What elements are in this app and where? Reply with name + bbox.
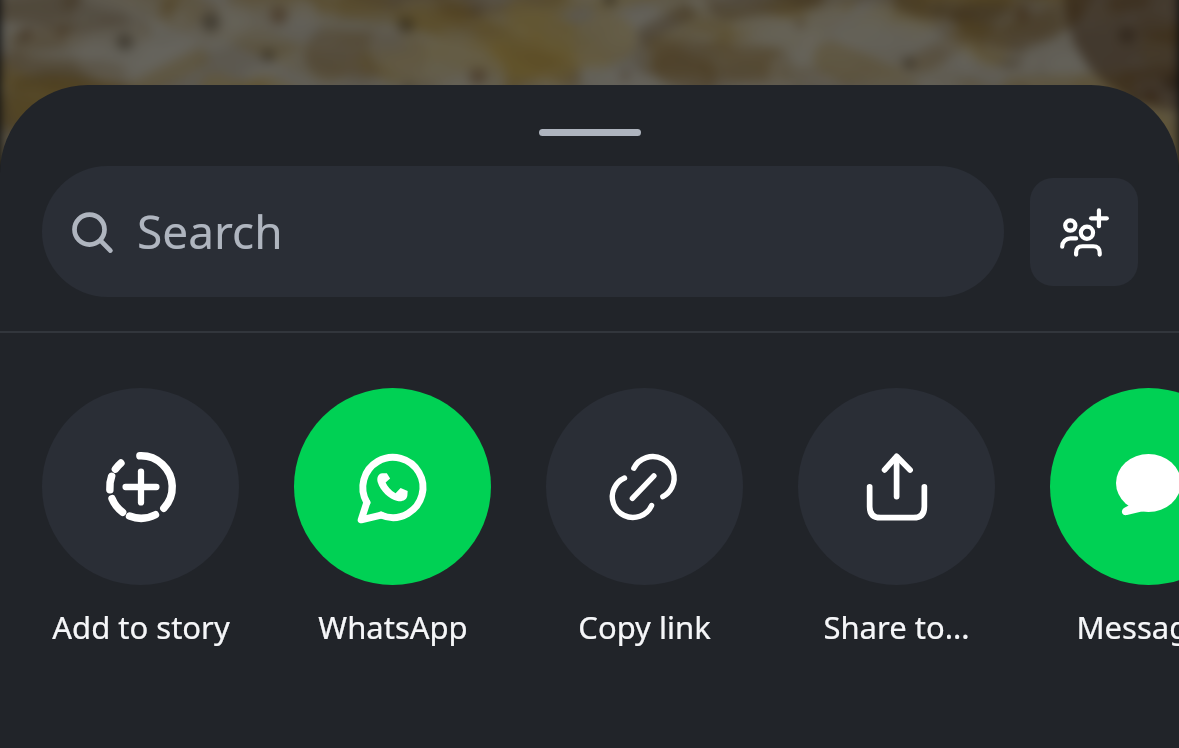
staticText: Copy link xyxy=(578,606,711,648)
staticText: Share to... xyxy=(823,606,970,648)
staticText: Messages xyxy=(1076,606,1179,648)
staticText: Search xyxy=(137,200,283,263)
button[interactable]: WhatsApp xyxy=(294,388,491,648)
button[interactable]: Copy link xyxy=(546,388,743,648)
button[interactable]: Messages xyxy=(1050,388,1179,648)
button[interactable]: Add people xyxy=(1030,178,1138,286)
button[interactable]: Add to story xyxy=(42,388,239,648)
button[interactable]: Search xyxy=(42,166,1004,297)
staticText: WhatsApp xyxy=(318,606,468,648)
staticText: Add to story xyxy=(52,606,230,648)
button[interactable]: Share to... xyxy=(798,388,995,648)
